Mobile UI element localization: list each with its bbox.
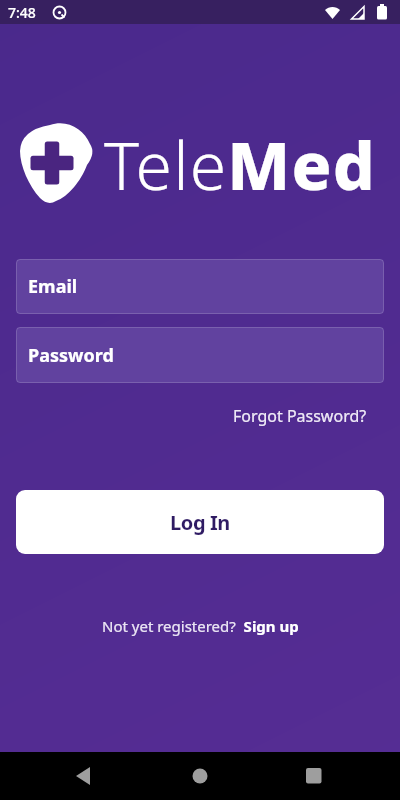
button[interactable]: Password [16, 327, 384, 383]
staticText: Forgot Password? [233, 405, 367, 427]
button[interactable]: Log In [16, 490, 384, 554]
button[interactable]: Not yet registered? Sign up [102, 616, 299, 636]
staticText: Not yet registered? Sign up [102, 616, 299, 636]
staticText: Password [28, 343, 114, 368]
staticText: Log In [170, 509, 230, 536]
button[interactable] [300, 766, 328, 786]
staticText: 7:48 [8, 3, 36, 22]
staticText: Email [28, 274, 78, 299]
staticText: TeleMed [104, 119, 377, 209]
button[interactable] [66, 766, 94, 786]
button[interactable] [186, 766, 214, 786]
button[interactable]: Email [16, 259, 384, 314]
button[interactable]: Forgot Password? [233, 405, 367, 427]
